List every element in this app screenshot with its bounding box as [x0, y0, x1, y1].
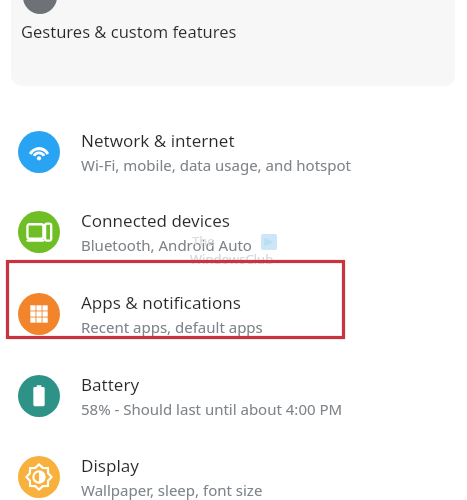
staticText: Recent apps, default apps — [81, 317, 263, 337]
staticText: 58% - Should last until about 4:00 PM — [81, 399, 343, 419]
staticText: Gestures & custom features — [21, 20, 237, 42]
staticText: Display — [81, 454, 139, 477]
staticText: Connected devices — [81, 209, 231, 232]
button[interactable]: Connected devices — [0, 193, 467, 271]
staticText: Network & internet — [81, 129, 235, 152]
staticText: WindowsClub — [190, 250, 274, 268]
button[interactable]: Display — [0, 438, 467, 500]
staticText: The — [192, 232, 215, 250]
button[interactable]: Gestures & custom features — [11, 0, 455, 86]
button[interactable]: Battery — [0, 357, 467, 435]
staticText: Wallpaper, sleep, font size — [81, 480, 263, 500]
button[interactable]: Apps & notifications — [0, 275, 467, 353]
button[interactable]: Network & internet — [0, 113, 467, 191]
staticText: Battery — [81, 373, 140, 396]
staticText: Bluetooth, Android Auto — [81, 235, 252, 255]
staticText: Wi-Fi, mobile, data usage, and hotspot — [81, 155, 351, 175]
staticText: Apps & notifications — [81, 291, 241, 314]
